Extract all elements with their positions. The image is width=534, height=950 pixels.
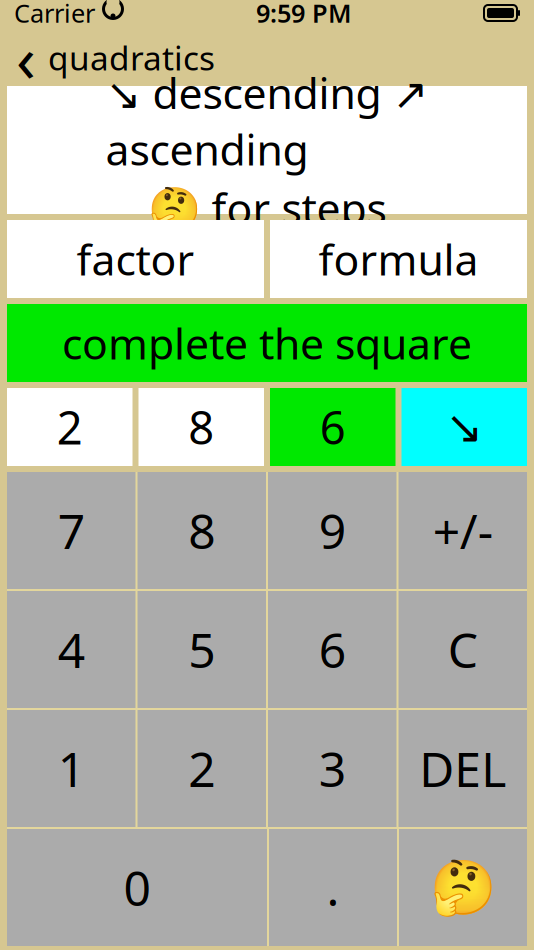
staticText: 7 <box>58 499 85 562</box>
button[interactable]: complete the square <box>7 304 527 382</box>
staticText: quadratics <box>48 35 215 80</box>
button[interactable]: 0 <box>7 829 267 946</box>
staticText: 6 <box>320 397 346 457</box>
staticText: 8 <box>188 499 215 562</box>
staticText: ↘ descending ↗ ascending <box>105 64 428 177</box>
button[interactable]: 1 <box>7 710 135 827</box>
button[interactable]: factor <box>7 220 264 298</box>
staticText: 4 <box>58 618 85 681</box>
button[interactable]: 4 <box>7 591 135 708</box>
button[interactable]: DEL <box>398 710 527 827</box>
staticText: 2 <box>57 397 83 457</box>
staticText: factor <box>76 231 194 287</box>
button[interactable]: 2 <box>7 388 132 466</box>
button[interactable]: 5 <box>137 591 266 708</box>
staticText: . <box>326 856 339 919</box>
button[interactable]: 7 <box>7 472 135 589</box>
staticText: 0 <box>123 856 150 919</box>
button[interactable]: ‹ <box>0 32 231 82</box>
staticText: ↘ <box>445 401 483 453</box>
button[interactable]: C <box>398 591 527 708</box>
staticText: formula <box>318 231 478 287</box>
button[interactable]: +/- <box>398 472 527 589</box>
staticText: complete the square <box>62 315 472 371</box>
button[interactable]: 6 <box>268 591 396 708</box>
staticText: 🤔 <box>430 857 496 918</box>
staticText: ‹ <box>16 15 36 100</box>
staticText: 2 <box>188 737 215 800</box>
button[interactable]: 6 <box>270 388 395 466</box>
staticText: 9 <box>319 499 346 562</box>
staticText: 1 <box>58 737 85 800</box>
staticText: C <box>448 618 478 681</box>
staticText: 3 <box>319 737 346 800</box>
staticText: Carrier <box>14 0 95 30</box>
button[interactable]: 8 <box>137 472 266 589</box>
button[interactable]: formula <box>270 220 527 298</box>
staticText: 5 <box>188 618 215 681</box>
button[interactable]: Descending order <box>401 388 527 466</box>
staticText: 🤔 for steps <box>147 179 386 236</box>
staticText: 8 <box>188 397 214 457</box>
staticText: DEL <box>419 737 506 800</box>
button[interactable]: 9 <box>268 472 396 589</box>
staticText: 9:59 PM <box>256 0 352 30</box>
staticText: +/- <box>433 499 493 562</box>
button[interactable]: Show steps <box>399 829 527 946</box>
staticText: 6 <box>319 618 346 681</box>
button[interactable]: . <box>269 829 397 946</box>
button[interactable]: 8 <box>138 388 264 466</box>
button[interactable]: 2 <box>137 710 266 827</box>
button[interactable]: 3 <box>268 710 396 827</box>
